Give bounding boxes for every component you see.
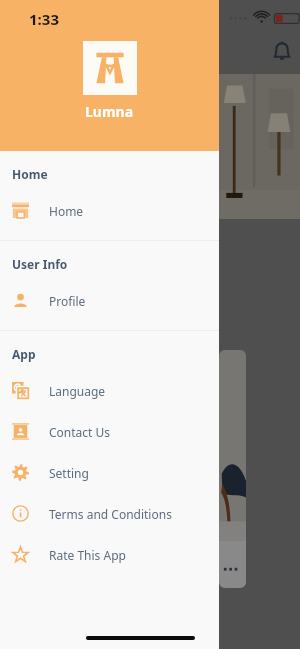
staticText: 1:33 xyxy=(29,9,59,29)
button[interactable]: Setting xyxy=(0,452,219,493)
staticText: Lumna xyxy=(85,102,134,121)
button[interactable]: Rate This App xyxy=(0,534,219,575)
staticText: Home xyxy=(49,203,84,219)
staticText: User Info xyxy=(12,256,68,272)
button[interactable]: Profile xyxy=(0,280,219,321)
staticText: App xyxy=(12,346,36,362)
button[interactable]: Home xyxy=(0,190,219,231)
staticText: Contact Us xyxy=(49,424,111,440)
staticText: Rate This App xyxy=(49,547,126,563)
staticText: Profile xyxy=(49,293,86,309)
button[interactable]: Contact Us xyxy=(0,411,219,452)
staticText: Home xyxy=(12,166,48,182)
button[interactable]: Terms and Conditions xyxy=(0,493,219,534)
button[interactable]: Language xyxy=(0,370,219,411)
staticText: Language xyxy=(49,383,106,399)
staticText: Setting xyxy=(49,465,89,481)
button[interactable]: Notifications xyxy=(270,40,294,64)
staticText: Terms and Conditions xyxy=(49,506,172,522)
